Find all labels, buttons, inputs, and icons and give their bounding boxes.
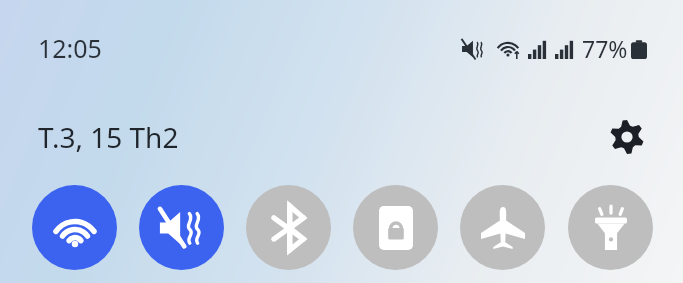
button[interactable]: Sound mute (139, 185, 224, 270)
button[interactable]: Airplane mode (460, 185, 545, 270)
button[interactable]: Wi-Fi (32, 185, 117, 270)
button[interactable]: Auto rotate locked (353, 185, 438, 270)
staticText: 12:05 (38, 31, 102, 65)
staticText: 77% (582, 33, 628, 64)
staticText: T.3, 15 Th2 (38, 118, 179, 156)
button[interactable]: Flashlight (568, 185, 653, 270)
button[interactable]: Bluetooth (246, 185, 331, 270)
button[interactable]: Settings (603, 113, 651, 161)
